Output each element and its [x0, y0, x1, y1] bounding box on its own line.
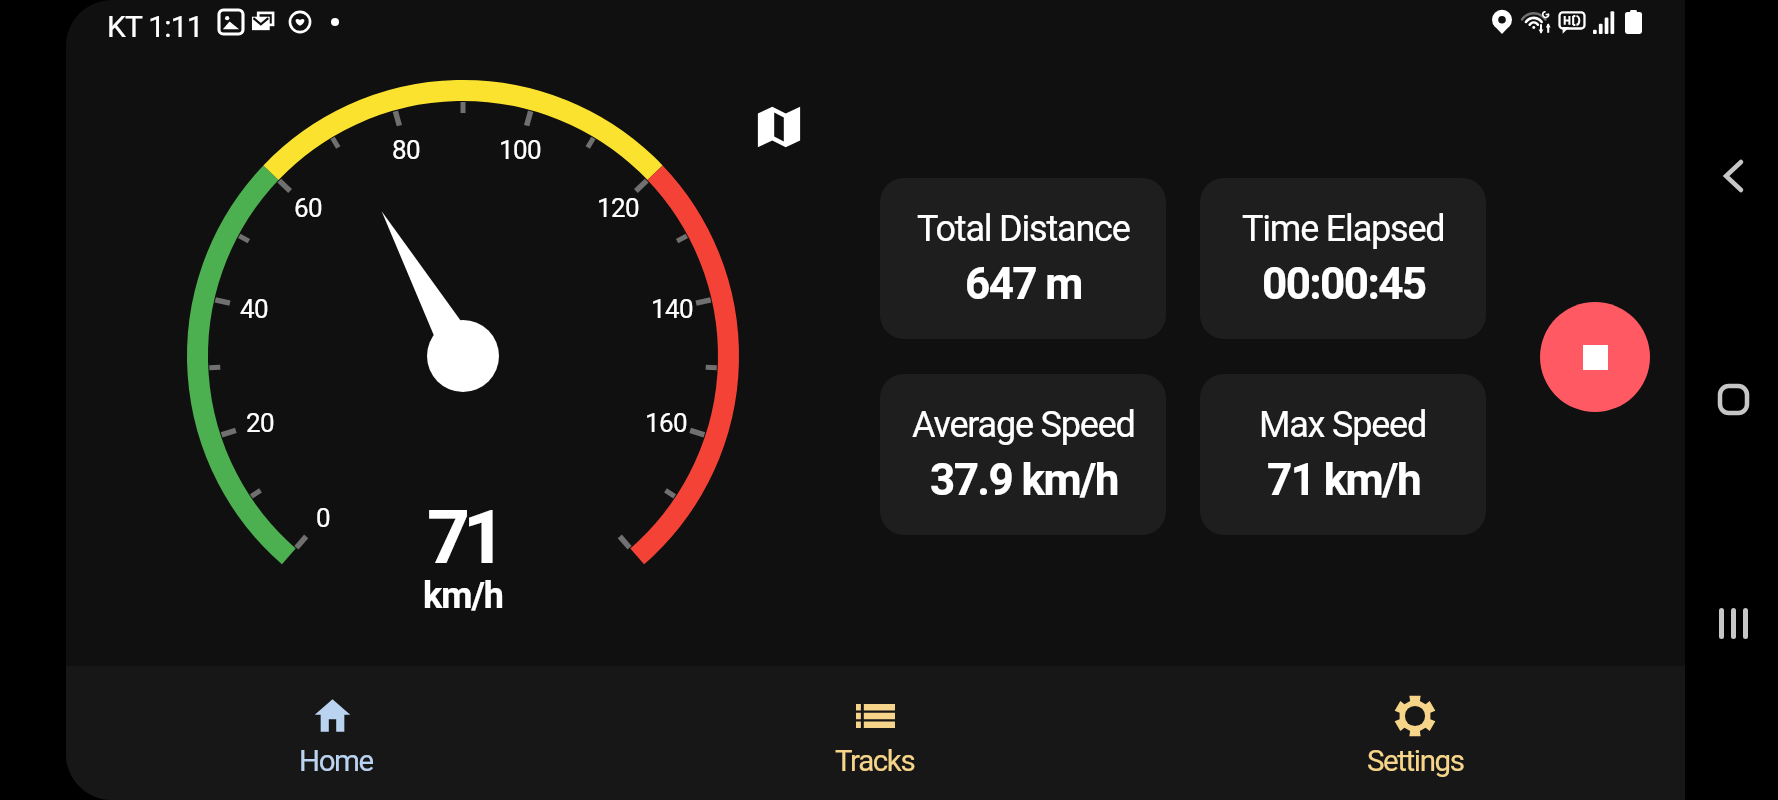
staticText: 160: [645, 408, 688, 438]
staticText: Time Elapsed: [1242, 208, 1445, 250]
staticText: 71: [427, 493, 500, 571]
staticText: 647 m: [965, 258, 1082, 310]
staticText: Tracks: [835, 744, 915, 778]
staticText: Average Speed: [912, 404, 1135, 446]
staticText: 60: [294, 193, 323, 223]
button[interactable]: Home: [1685, 368, 1778, 430]
button[interactable]: Tracks: [605, 666, 1145, 800]
button[interactable]: Recents: [1685, 592, 1778, 654]
button[interactable]: Back: [1685, 145, 1778, 207]
staticText: 20: [246, 408, 275, 438]
staticText: 40: [240, 294, 269, 324]
staticText: KT 1:11: [107, 9, 203, 44]
button[interactable]: Average Speed: [880, 374, 1166, 535]
staticText: 80: [392, 135, 421, 165]
staticText: Total Distance: [917, 208, 1130, 250]
button[interactable]: Map: [748, 96, 810, 158]
staticText: 37.9 km/h: [930, 454, 1118, 506]
button[interactable]: Max Speed: [1200, 374, 1486, 535]
staticText: 71 km/h: [1267, 454, 1420, 506]
button[interactable]: Time Elapsed: [1200, 178, 1486, 339]
button[interactable]: Stop: [1540, 302, 1650, 412]
staticText: km/h: [423, 575, 504, 617]
staticText: Settings: [1367, 744, 1464, 778]
staticText: 0: [316, 503, 331, 533]
button[interactable]: Total Distance: [880, 178, 1166, 339]
button[interactable]: Home: [66, 666, 605, 800]
staticText: Max Speed: [1259, 404, 1427, 446]
staticText: 00:00:45: [1262, 258, 1426, 310]
staticText: Home: [299, 744, 373, 778]
button[interactable]: Settings: [1145, 666, 1685, 800]
staticText: 120: [597, 193, 640, 223]
staticText: 100: [499, 135, 542, 165]
staticText: 140: [651, 294, 694, 324]
